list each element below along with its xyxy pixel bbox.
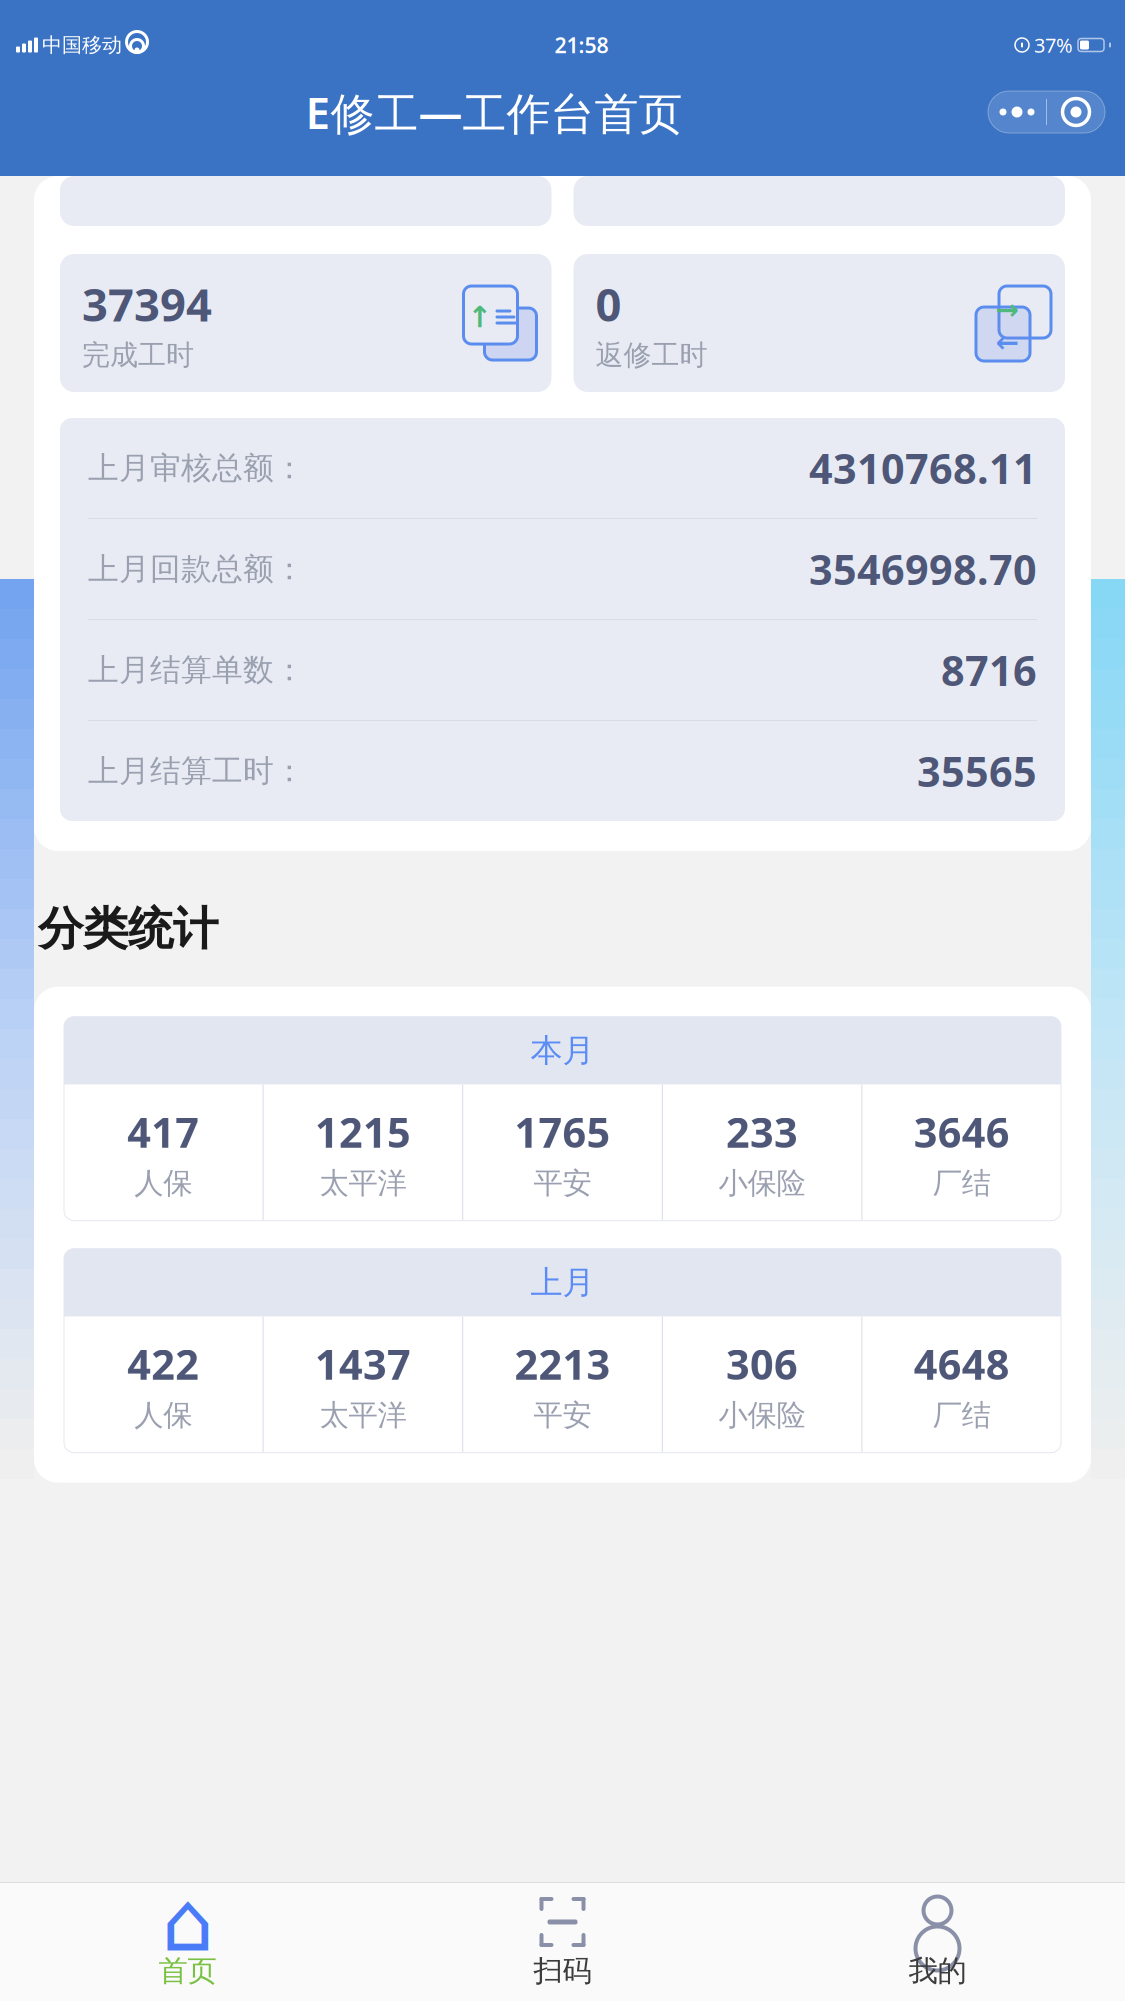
staticText: 3546998.70 — [809, 542, 1037, 596]
staticText: 上月 — [530, 1263, 594, 1302]
button[interactable]: 我的 — [750, 1886, 1125, 1998]
staticText: 3646 — [914, 1104, 1010, 1159]
staticText: 上月结算工时： — [88, 752, 305, 790]
staticText: 0 — [595, 274, 621, 334]
staticText: E修工—工作台首页 — [305, 83, 682, 141]
staticText: 扫码 — [533, 1953, 591, 1989]
staticText: 上月结算单数： — [88, 651, 305, 689]
staticText: 4648 — [914, 1336, 1010, 1391]
staticText: 人保 — [134, 1397, 192, 1433]
staticText: 37% — [1034, 32, 1073, 58]
staticText: 厂结 — [933, 1397, 991, 1433]
staticText: 人保 — [134, 1165, 192, 1201]
staticText: 上月审核总额： — [88, 449, 305, 487]
button[interactable]: ⌂ — [0, 1886, 375, 1998]
staticText: 我的 — [908, 1953, 966, 1989]
staticText: ⌂ — [161, 1875, 213, 1969]
button[interactable]: 更多 — [988, 91, 1046, 133]
staticText: 平安 — [533, 1165, 591, 1201]
staticText: 完成工时 — [82, 338, 194, 372]
staticText: 太平洋 — [319, 1165, 406, 1201]
staticText: ↑ — [467, 300, 492, 334]
staticText: 平安 — [533, 1397, 591, 1433]
staticText: 中国移动 — [42, 33, 122, 57]
staticText: 2213 — [514, 1336, 610, 1391]
staticText: 1437 — [315, 1336, 411, 1391]
staticText: 分类统计 — [38, 901, 218, 957]
staticText: 小保险 — [719, 1397, 806, 1433]
staticText: ← — [995, 326, 1018, 358]
staticText: 太平洋 — [319, 1397, 406, 1433]
staticText: 233 — [726, 1104, 798, 1159]
staticText: 上月回款总额： — [88, 550, 305, 588]
staticText: 21:58 — [554, 31, 608, 59]
staticText: 厂结 — [933, 1165, 991, 1201]
staticText: 4310768.11 — [809, 441, 1037, 495]
staticText: 37394 — [82, 274, 212, 334]
staticText: 首页 — [158, 1953, 216, 1989]
staticText: 306 — [726, 1336, 798, 1391]
staticText: 1765 — [514, 1104, 610, 1159]
button[interactable]: 关闭 — [1047, 91, 1105, 133]
button[interactable]: 0 — [573, 254, 1065, 392]
staticText: 422 — [127, 1336, 199, 1391]
button[interactable]: 37394 — [60, 254, 551, 392]
staticText: 小保险 — [719, 1165, 806, 1201]
staticText: 返修工时 — [595, 338, 707, 372]
staticText: 1215 — [315, 1104, 411, 1159]
staticText: 35565 — [917, 744, 1037, 798]
staticText: 8716 — [941, 643, 1037, 697]
staticText: 本月 — [530, 1031, 594, 1070]
button[interactable]: 扫码 — [375, 1886, 750, 1998]
staticText: 417 — [127, 1104, 199, 1159]
staticText: → — [995, 294, 1018, 325]
